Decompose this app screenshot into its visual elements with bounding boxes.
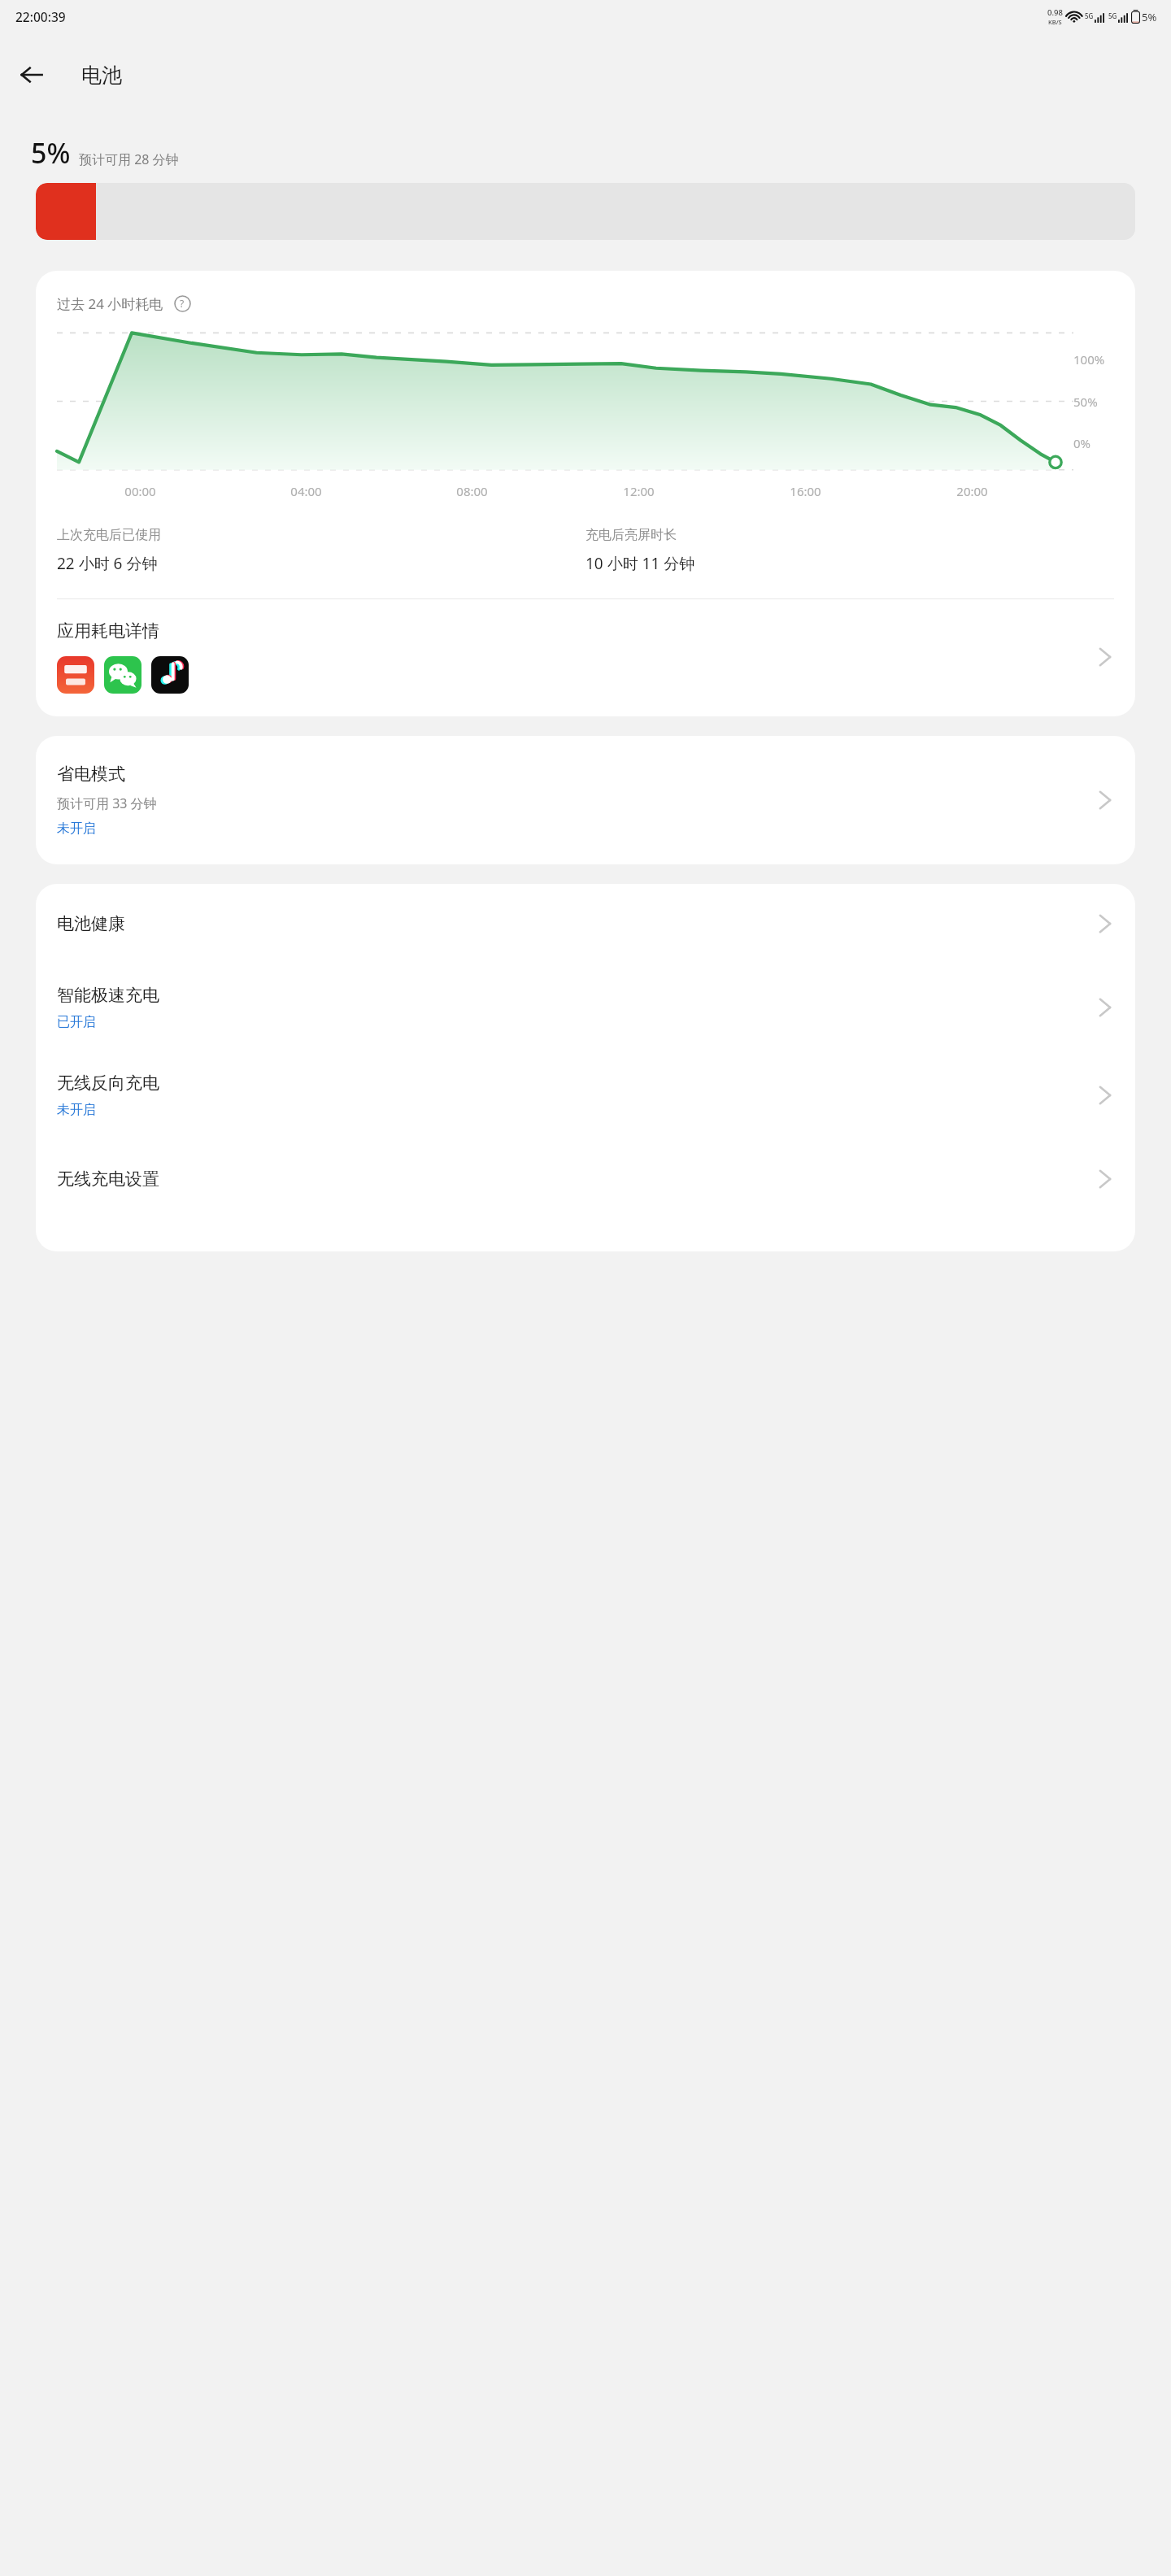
button[interactable]: Help bbox=[171, 292, 194, 315]
staticText: 省电模式 bbox=[57, 764, 125, 785]
staticText: 预计可用 33 分钟 bbox=[57, 794, 157, 812]
staticText: 无线充电设置 bbox=[57, 1168, 159, 1190]
staticText: 已开启 bbox=[57, 1014, 96, 1030]
staticText: 智能极速充电 bbox=[57, 985, 159, 1006]
staticText: 22:00:39 bbox=[15, 8, 66, 25]
button[interactable]: 智能极速充电 bbox=[36, 964, 1135, 1051]
staticText: 5% bbox=[31, 134, 71, 172]
staticText: 5% bbox=[1142, 10, 1157, 24]
staticText: 00:00 bbox=[124, 483, 156, 499]
staticText: 应用耗电详情 bbox=[57, 620, 159, 642]
staticText: 04:00 bbox=[290, 483, 322, 499]
staticText: 未开启 bbox=[57, 820, 96, 837]
button[interactable]: 无线充电设置 bbox=[36, 1139, 1135, 1219]
staticText: 电池 bbox=[81, 63, 122, 88]
staticText: ? bbox=[180, 297, 185, 310]
staticText: 预计可用 28 分钟 bbox=[79, 150, 179, 168]
staticText: 10 小时 11 分钟 bbox=[585, 553, 695, 574]
button[interactable]: 无线反向充电 bbox=[36, 1051, 1135, 1139]
staticText: 5G bbox=[1085, 11, 1094, 20]
staticText: 5G bbox=[1108, 11, 1117, 20]
staticText: 无线反向充电 bbox=[57, 1073, 159, 1094]
staticText: 22 小时 6 分钟 bbox=[57, 553, 158, 574]
staticText: 未开启 bbox=[57, 1102, 96, 1118]
staticText: 0% bbox=[1073, 435, 1091, 451]
staticText: 100% bbox=[1073, 351, 1105, 368]
staticText: 0.98 bbox=[1047, 7, 1063, 18]
staticText: 电池健康 bbox=[57, 913, 125, 934]
button[interactable]: 应用耗电详情 bbox=[36, 599, 1135, 716]
staticText: 50% bbox=[1073, 394, 1098, 410]
staticText: 充电后亮屏时长 bbox=[585, 527, 677, 543]
staticText: 过去 24 小时耗电 bbox=[57, 294, 163, 313]
staticText: 20:00 bbox=[956, 483, 988, 499]
button[interactable]: 电池健康 bbox=[36, 884, 1135, 964]
staticText: KB/S bbox=[1048, 18, 1062, 26]
staticText: 16:00 bbox=[790, 483, 821, 499]
staticText: 12:00 bbox=[623, 483, 655, 499]
button[interactable]: 省电模式 bbox=[36, 736, 1135, 864]
staticText: 08:00 bbox=[456, 483, 488, 499]
button[interactable]: Back bbox=[7, 50, 56, 99]
staticText: 上次充电后已使用 bbox=[57, 527, 161, 543]
